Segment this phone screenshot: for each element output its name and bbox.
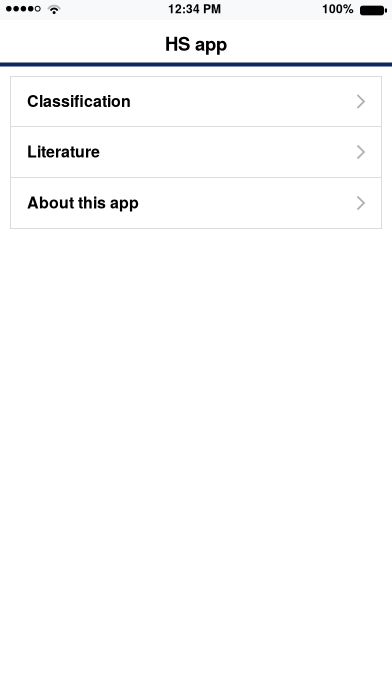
staticText: 100% xyxy=(322,0,354,17)
staticText: About this app xyxy=(27,190,139,213)
button[interactable]: Classification xyxy=(11,77,381,126)
button[interactable]: Literature xyxy=(11,127,381,177)
staticText: Classification xyxy=(27,89,131,112)
staticText: Literature xyxy=(27,139,100,162)
button[interactable]: About this app xyxy=(11,178,381,228)
staticText: 12:34 PM xyxy=(168,0,221,17)
staticText: HS app xyxy=(165,30,227,56)
